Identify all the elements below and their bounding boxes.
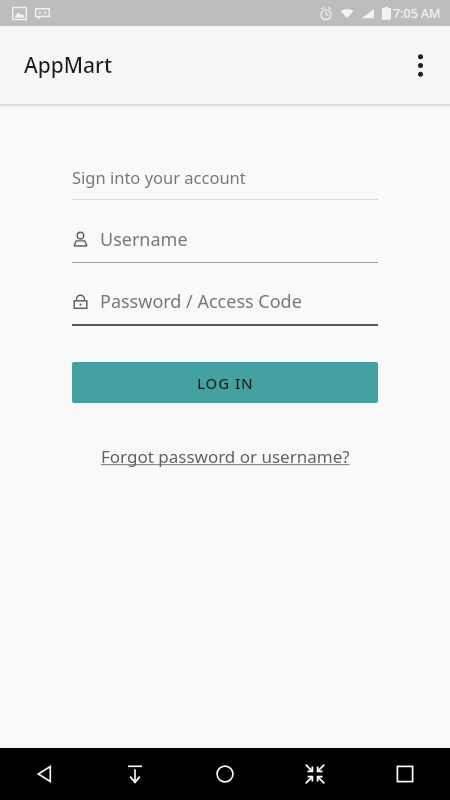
button[interactable]: Hide keyboard — [90, 748, 180, 800]
button[interactable]: Recents — [360, 748, 450, 800]
staticText: 7:05 AM — [393, 5, 441, 22]
staticText: Username — [100, 227, 188, 252]
button[interactable]: Home — [180, 748, 270, 800]
staticText: LOG IN — [197, 373, 254, 393]
staticText: Sign into your account — [72, 166, 246, 188]
button[interactable]: Username — [72, 227, 378, 252]
button[interactable]: Forgot password or username? — [95, 443, 356, 470]
button[interactable]: Password / Access Code — [72, 289, 378, 314]
staticText: Forgot password or username? — [101, 445, 350, 468]
button[interactable]: More options — [398, 43, 442, 87]
button[interactable]: LOG IN — [72, 362, 378, 403]
staticText: AppMart — [24, 51, 113, 80]
button[interactable]: Shrink — [270, 748, 360, 800]
staticText: Password / Access Code — [100, 289, 302, 314]
button[interactable]: Back — [0, 748, 90, 800]
